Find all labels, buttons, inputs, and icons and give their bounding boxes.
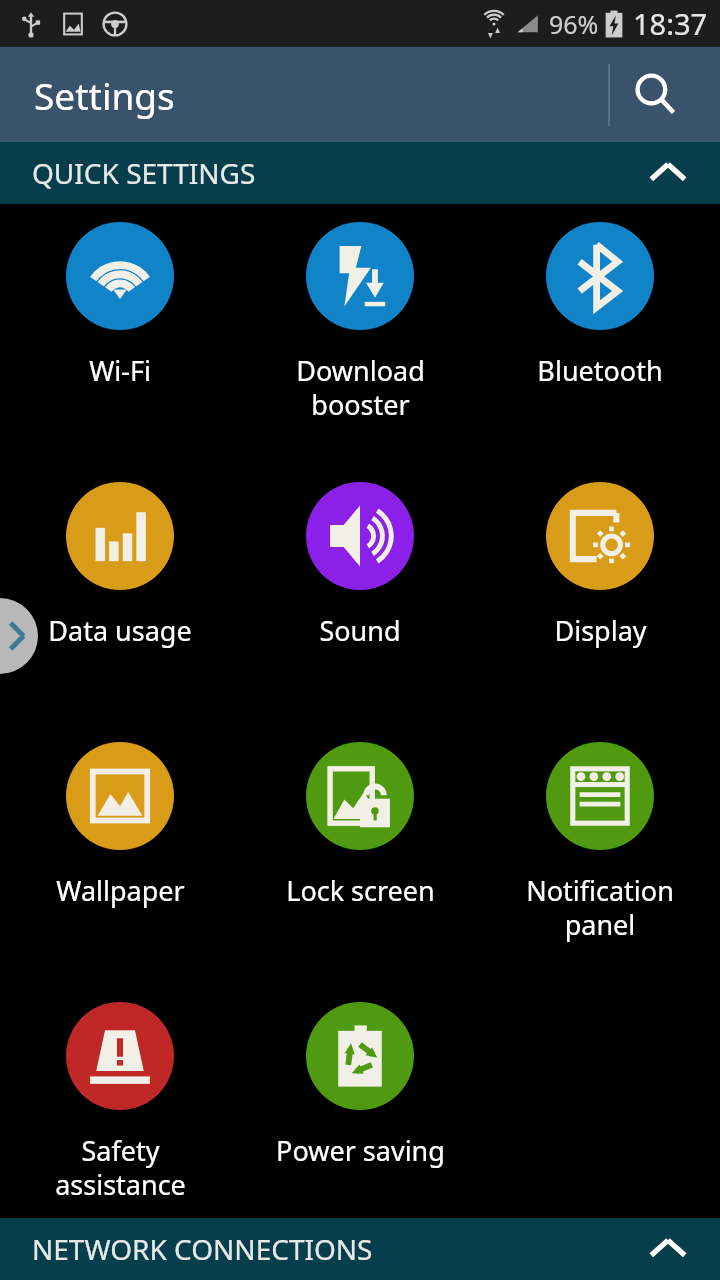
staticText: Bluetooth [537,352,663,389]
other: Collapse [646,151,690,195]
button[interactable]: Bluetooth [480,218,720,478]
button[interactable]: Display [480,478,720,738]
button[interactable]: QUICK SETTINGS [0,142,720,204]
button[interactable]: Download booster [240,218,480,478]
staticText: 18:37 [633,4,708,43]
button[interactable]: Search [620,59,692,131]
staticText: Notification panel [526,872,674,943]
staticText: NETWORK CONNECTIONS [32,1230,373,1268]
button[interactable]: Wallpaper [0,738,240,998]
button[interactable]: Open panel [0,598,38,674]
staticText: Sound [319,612,401,649]
button[interactable]: Safety assistance [0,998,240,1258]
button[interactable]: NETWORK CONNECTIONS [0,1218,720,1280]
staticText: Safety assistance [55,1132,186,1203]
staticText: Download booster [296,352,425,423]
button[interactable]: Settings [0,47,720,142]
staticText: Data usage [48,612,192,649]
button[interactable]: Wi-Fi [0,218,240,478]
staticText: Power saving [276,1132,445,1169]
staticText: Display [554,612,647,649]
button[interactable]: Lock screen [240,738,480,998]
staticText: Lock screen [286,872,435,909]
staticText: Wallpaper [56,872,185,909]
other: Collapse [646,1227,690,1271]
staticText: Settings [34,70,175,120]
button[interactable]: Power saving [240,998,480,1258]
button[interactable]: Data usage [0,478,240,738]
button[interactable]: Notification panel [480,738,720,998]
staticText: QUICK SETTINGS [32,154,256,192]
staticText: Wi-Fi [89,352,151,389]
button[interactable]: Sound [240,478,480,738]
staticText: 96% [549,7,599,41]
